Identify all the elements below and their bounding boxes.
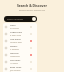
button[interactable]: Gallery bbox=[3, 44, 37, 51]
staticText: Search & Discover bbox=[0, 3, 64, 8]
staticText: 4 exhibits bbox=[10, 48, 19, 51]
button[interactable]: City parks bbox=[3, 58, 37, 65]
staticText: Gallery bbox=[10, 45, 18, 48]
staticText: City parks bbox=[10, 59, 21, 62]
staticText: Markets bbox=[10, 52, 19, 55]
staticText: Weekends bbox=[10, 55, 20, 58]
other: Search bbox=[32, 17, 36, 21]
staticText: Tonight 8pm bbox=[10, 41, 22, 44]
button[interactable]: Live music bbox=[3, 37, 37, 44]
button[interactable]: Coffee bars bbox=[3, 30, 37, 37]
button[interactable]: Markets bbox=[3, 51, 37, 58]
staticText: Trails bbox=[10, 24, 16, 27]
button[interactable]: Book clubs bbox=[3, 65, 37, 72]
staticText: Search anything bbox=[7, 18, 23, 21]
staticText: Coffee bars bbox=[10, 31, 22, 34]
staticText: Join nearby bbox=[10, 69, 21, 72]
button[interactable]: Trails bbox=[3, 23, 37, 30]
staticText: 23 routes bbox=[10, 27, 19, 30]
button[interactable]: Search anything bbox=[4, 16, 37, 22]
staticText: 12 spots bbox=[10, 62, 18, 65]
staticText: Book clubs bbox=[10, 66, 22, 69]
staticText: Explore what's around you bbox=[0, 9, 64, 12]
staticText: 8 open now bbox=[10, 34, 21, 37]
staticText: Live music bbox=[10, 38, 21, 41]
